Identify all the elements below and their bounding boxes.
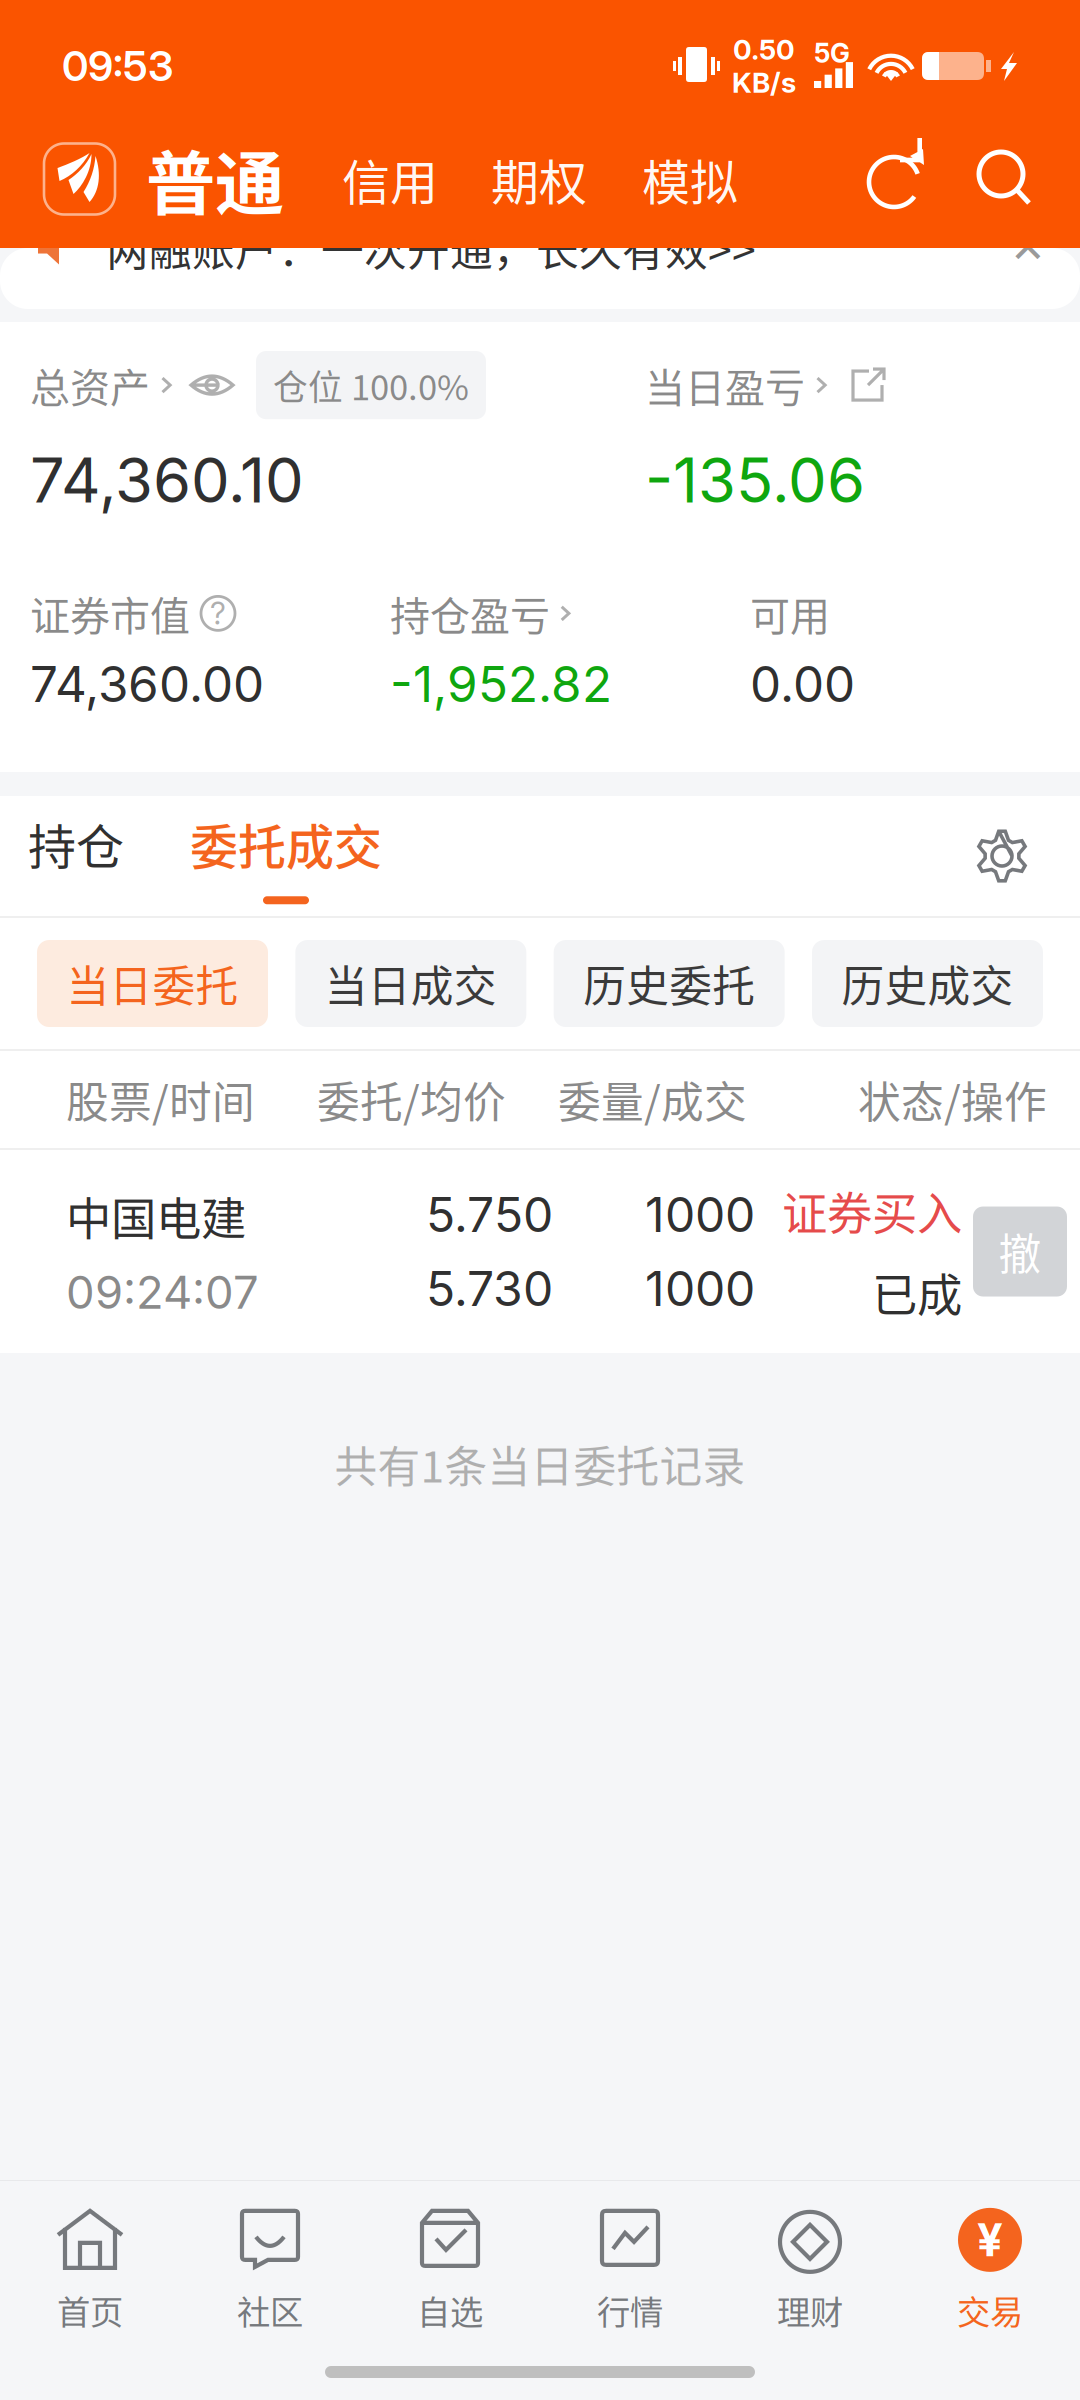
button[interactable]: Toggle balance visibility [188,366,236,404]
staticText: 当日盈亏 [645,356,805,414]
button[interactable]: 持仓 [28,801,124,911]
staticText: 中国电建 [66,1183,246,1249]
staticText: 持仓盈亏 [390,584,550,642]
staticText: 5.750 [426,1185,553,1243]
staticText: 共有1条当日委托记录 [334,1433,745,1495]
staticText: 证券买入 [782,1178,962,1243]
button[interactable]: 历史成交 [812,940,1043,1027]
staticText: 模拟 [642,144,738,214]
staticText: 股票/时间 [66,1069,255,1130]
button[interactable]: 信用 [342,144,438,214]
button[interactable]: 持仓盈亏 [390,584,750,642]
button[interactable]: 模拟 [642,144,738,214]
button[interactable]: 社区 [180,2181,360,2333]
staticText: 0.50 [733,33,795,66]
button[interactable]: App logo [44,143,115,214]
staticText: 理财 [777,2286,843,2334]
button[interactable]: Search [974,148,1036,210]
staticText: 已成 [872,1259,962,1325]
button[interactable]: 当日委托 [37,940,268,1027]
button[interactable]: 行情 [540,2181,720,2333]
button[interactable]: 首页 [0,2181,180,2333]
staticText: ✕ [1010,223,1046,272]
staticText: 0.00 [750,654,855,714]
button[interactable]: 历史委托 [554,940,785,1027]
staticText: 1000 [645,1259,755,1318]
button[interactable]: 自选 [360,2181,540,2333]
staticText: 信用 [342,144,438,214]
staticText: 自选 [417,2286,483,2334]
staticText: 当日成交 [325,953,497,1014]
staticText: 状态/操作 [858,1069,1047,1130]
staticText: KB/s [732,65,796,99]
button[interactable]: 期权 [491,144,587,214]
button[interactable]: 普通 [146,129,284,229]
staticText: 普通 [146,129,284,229]
staticText: 74,360.00 [30,654,264,714]
staticText: 仓位 100.0% [273,360,469,410]
staticText: 期权 [491,144,587,214]
staticText: 委量/成交 [558,1069,747,1130]
staticText: 5G [814,37,850,69]
button[interactable]: 当日成交 [295,940,526,1027]
staticText: 社区 [237,2286,303,2334]
button[interactable]: 撤 [973,1206,1067,1296]
button[interactable]: 理财 [720,2181,900,2333]
staticText: 历史委托 [583,953,755,1014]
staticText: -135.06 [645,443,865,517]
button[interactable]: 中国电建 [0,1150,1080,1353]
button[interactable]: 当日盈亏 [645,356,891,414]
button[interactable]: 仓位 100.0% [256,351,486,419]
button[interactable]: Settings [975,829,1029,883]
staticText: 委托成交 [190,809,382,878]
staticText: 74,360.10 [30,443,304,517]
button[interactable]: 总资产 [30,356,182,414]
button[interactable]: 委托成交 [190,801,382,911]
staticText: 证券市值 [30,584,190,642]
staticText: 两融账户：一次开通，长久有效>> [106,217,756,278]
staticText: 交易 [957,2286,1023,2334]
staticText: 首页 [57,2286,123,2334]
staticText: 当日委托 [66,953,238,1014]
button[interactable]: ¥ [900,2181,1080,2333]
staticText: 撤 [998,1221,1041,1282]
staticText: 可用 [750,584,830,642]
staticText: 委托/均价 [317,1069,506,1130]
staticText: 持仓 [28,809,124,878]
staticText: 行情 [597,2286,663,2334]
staticText: ¥ [977,2212,1003,2267]
staticText: 1000 [645,1185,755,1243]
staticText: 历史成交 [841,953,1013,1014]
staticText: 09:53 [62,41,173,91]
staticText: 5.730 [426,1259,553,1318]
button[interactable]: Refresh [866,148,928,210]
staticText: 09:24:07 [66,1265,259,1320]
staticText: -1,952.82 [390,654,612,714]
staticText: ? [210,595,226,632]
staticText: 总资产 [30,356,150,414]
